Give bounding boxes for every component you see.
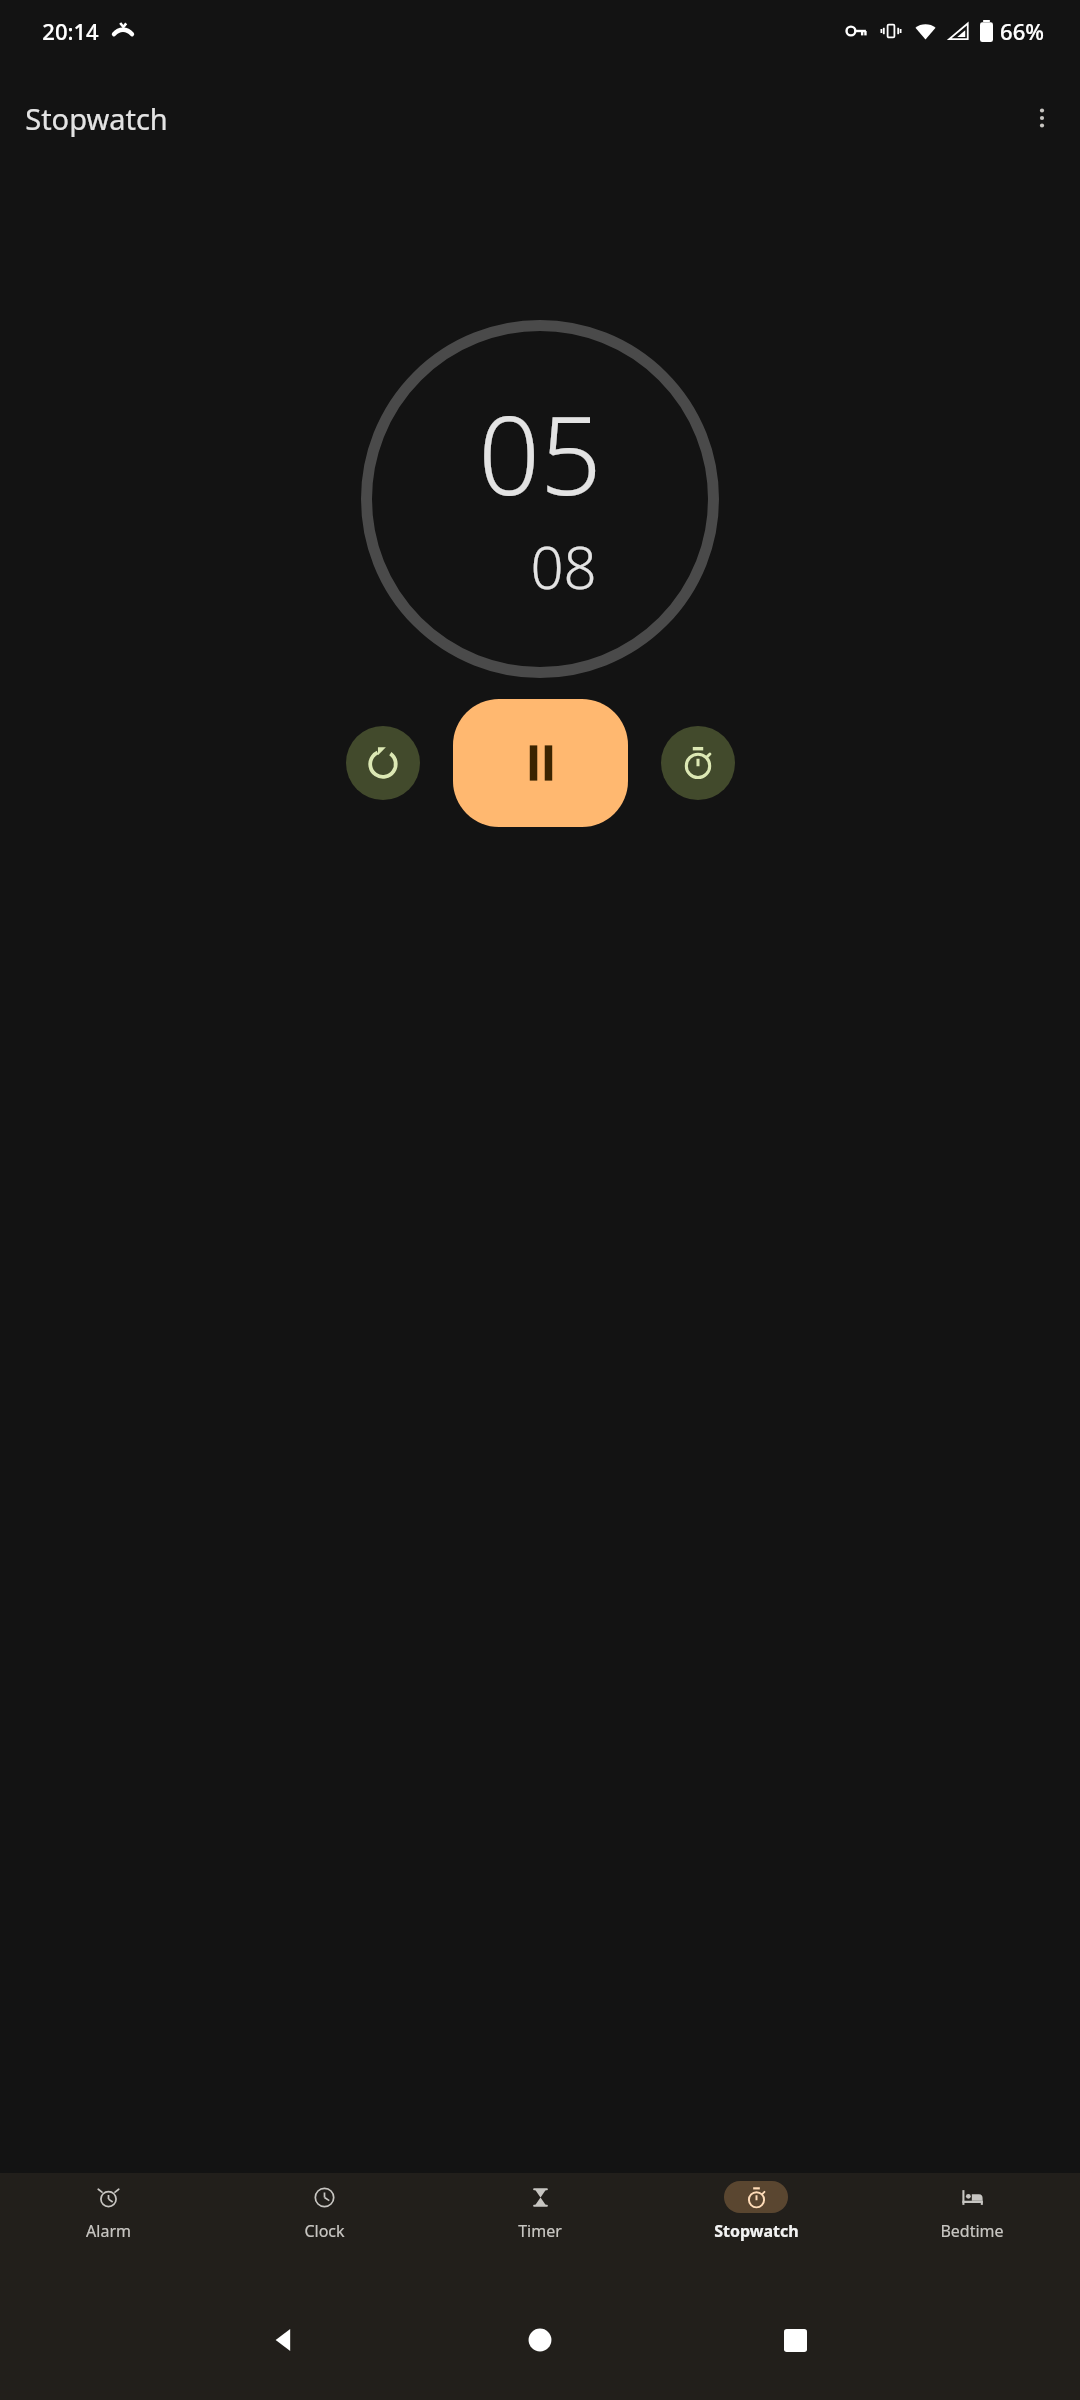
staticText: Stopwatch xyxy=(25,99,168,138)
button[interactable]: Alarm xyxy=(0,2173,216,2280)
staticText: Clock xyxy=(304,2220,345,2242)
staticText: 08 xyxy=(530,527,597,606)
staticText: 20:14 xyxy=(42,16,99,46)
button[interactable]: Home xyxy=(510,2310,570,2370)
staticText: Bedtime xyxy=(940,2220,1004,2242)
button[interactable]: More options xyxy=(1018,94,1066,142)
button[interactable]: Stopwatch xyxy=(648,2173,864,2280)
button[interactable]: Back xyxy=(255,2310,315,2370)
staticText: Alarm xyxy=(86,2220,131,2242)
button[interactable]: Lap xyxy=(661,726,735,800)
staticText: 66% xyxy=(1000,16,1044,46)
button[interactable]: Bedtime xyxy=(864,2173,1080,2280)
button[interactable]: Reset xyxy=(346,726,420,800)
button[interactable]: Pause xyxy=(453,699,628,827)
staticText: 05 xyxy=(478,380,602,527)
staticText: Timer xyxy=(518,2220,562,2242)
staticText: Stopwatch xyxy=(714,2220,799,2242)
button[interactable]: Timer xyxy=(432,2173,648,2280)
button[interactable]: Clock xyxy=(216,2173,432,2280)
button[interactable]: Recent apps xyxy=(765,2310,825,2370)
